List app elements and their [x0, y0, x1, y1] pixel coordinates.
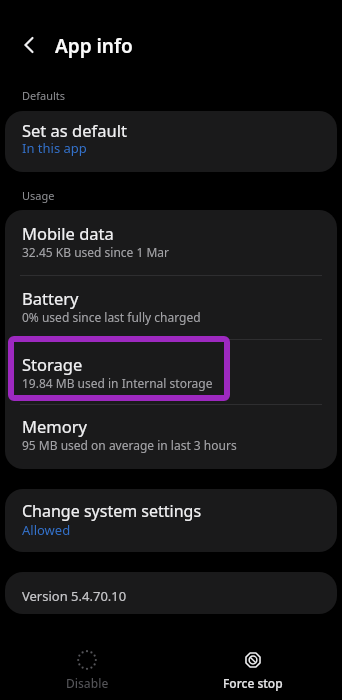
staticText: In this app	[22, 139, 87, 157]
staticText: Disable	[66, 675, 109, 691]
staticText: Defaults	[22, 88, 66, 103]
staticText: Set as default	[22, 119, 127, 141]
staticText: Mobile data	[22, 222, 114, 244]
button[interactable]	[5, 340, 337, 404]
staticText: Battery	[22, 287, 79, 309]
staticText: Allowed	[22, 521, 71, 539]
staticText: Change system settings	[22, 500, 202, 522]
button[interactable]	[5, 572, 337, 614]
staticText: 32.45 KB used since 1 Mar	[22, 244, 170, 260]
button[interactable]	[5, 404, 337, 469]
staticText: App info	[55, 33, 133, 59]
staticText: 95 MB used on average in last 3 hours	[22, 437, 237, 453]
staticText: Storage	[22, 353, 83, 375]
staticText: 0% used since last fully charged	[22, 309, 201, 325]
button[interactable]	[5, 276, 337, 340]
button[interactable]	[5, 489, 337, 552]
staticText: 19.84 MB used in Internal storage	[22, 375, 213, 391]
staticText: Version 5.4.70.10	[22, 587, 127, 605]
button[interactable]	[5, 210, 337, 275]
staticText: Memory	[22, 415, 87, 437]
staticText: Usage	[22, 188, 55, 203]
button[interactable]	[5, 111, 337, 172]
staticText: Force stop	[223, 675, 283, 691]
button[interactable]: Force stop	[211, 644, 295, 692]
button[interactable]: Disable	[45, 644, 129, 692]
